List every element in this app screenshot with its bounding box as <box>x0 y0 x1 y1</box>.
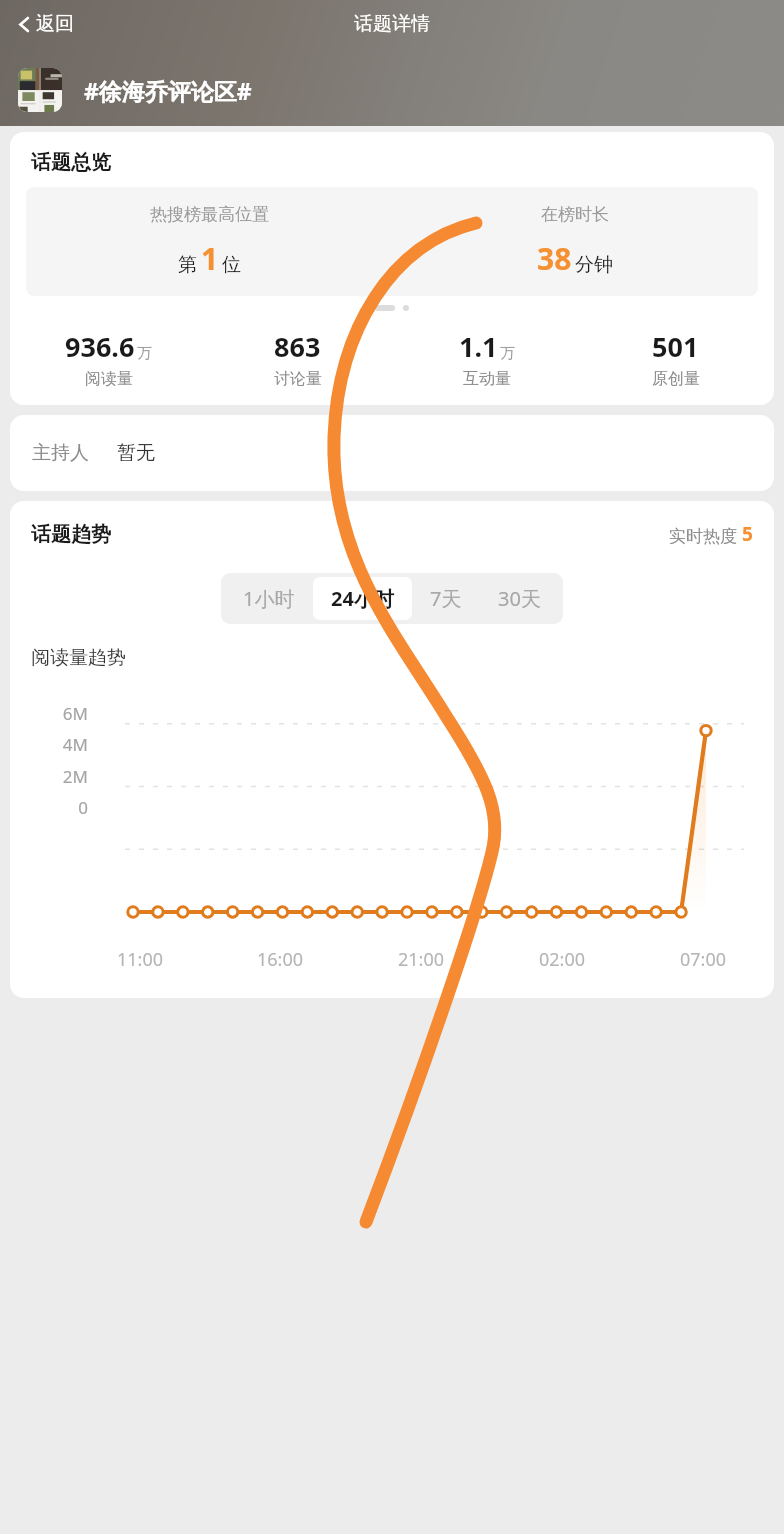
staticText: 分钟 <box>575 253 613 277</box>
staticText: 5 <box>742 521 753 547</box>
staticText: 讨论量 <box>274 369 322 389</box>
staticText: 在榜时长 <box>541 204 609 225</box>
staticText: 实时热度 <box>669 526 737 547</box>
staticText: 38 <box>537 238 572 279</box>
staticText: 阅读量 <box>85 369 133 389</box>
button[interactable]: 936.6 <box>14 328 203 389</box>
staticText: 阅读量趋势 <box>31 646 126 670</box>
button[interactable]: 1.1 <box>392 328 581 389</box>
staticText: 07:00 <box>680 947 727 972</box>
staticText: 1小时 <box>243 585 295 612</box>
button[interactable]: 863 <box>203 328 392 389</box>
button[interactable]: 7天 <box>412 577 480 620</box>
staticText: 30天 <box>498 585 541 612</box>
staticText: 02:00 <box>539 947 586 972</box>
staticText: 1.1 <box>459 328 498 365</box>
staticText: #徐海乔评论区# <box>84 75 252 106</box>
staticText: 暂无 <box>117 441 155 465</box>
staticText: 1 <box>201 238 219 279</box>
staticText: 万 <box>137 344 152 363</box>
staticText: 501 <box>652 328 699 365</box>
staticText: 话题趋势 <box>31 522 111 547</box>
staticText: 7天 <box>430 585 462 612</box>
button[interactable]: #徐海乔评论区# <box>18 68 252 112</box>
button[interactable]: 24小时 <box>313 577 412 620</box>
staticText: 21:00 <box>398 947 445 972</box>
button[interactable]: 30天 <box>480 577 559 620</box>
button[interactable]: 1小时 <box>225 577 313 620</box>
button[interactable]: 返回 <box>10 8 80 40</box>
staticText: 863 <box>274 328 321 365</box>
staticText: 返回 <box>36 12 74 36</box>
button[interactable]: 实时热度 <box>669 521 753 547</box>
staticText: 936.6 <box>65 328 135 365</box>
button[interactable]: 501 <box>581 328 770 389</box>
staticText: 话题详情 <box>354 12 430 36</box>
staticText: 话题总览 <box>31 150 111 175</box>
staticText: 第 <box>178 253 197 277</box>
staticText: 24小时 <box>331 585 394 612</box>
staticText: 原创量 <box>652 369 700 389</box>
button[interactable]: 热搜榜最高位置 <box>26 187 758 296</box>
staticText: 16:00 <box>257 947 304 972</box>
staticText: 11:00 <box>117 947 164 972</box>
staticText: 互动量 <box>463 369 511 389</box>
staticText: 热搜榜最高位置 <box>150 204 269 225</box>
staticText: 0 <box>10 796 88 819</box>
staticText: 4M <box>10 733 88 756</box>
button[interactable]: 主持人 <box>10 415 774 491</box>
staticText: 位 <box>222 253 241 277</box>
staticText: 6M <box>10 702 88 725</box>
staticText: 2M <box>10 765 88 788</box>
staticText: 万 <box>500 344 515 363</box>
staticText: 主持人 <box>32 441 89 465</box>
